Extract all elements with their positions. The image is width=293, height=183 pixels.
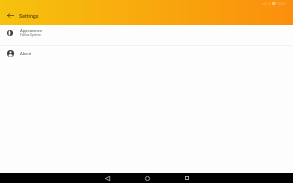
button[interactable]: Back [94, 173, 120, 183]
staticText: Settings [19, 13, 39, 19]
staticText: 10:21 [277, 1, 287, 5]
button[interactable]: About [0, 46, 293, 66]
button[interactable]: Home [134, 173, 160, 183]
staticText: Follow System [20, 33, 41, 37]
button[interactable]: Appearance [0, 25, 293, 45]
button[interactable]: Recent apps [174, 173, 200, 183]
button[interactable]: Navigate up [5, 10, 16, 21]
staticText: About [20, 51, 32, 56]
staticText: Appearance [20, 28, 43, 33]
